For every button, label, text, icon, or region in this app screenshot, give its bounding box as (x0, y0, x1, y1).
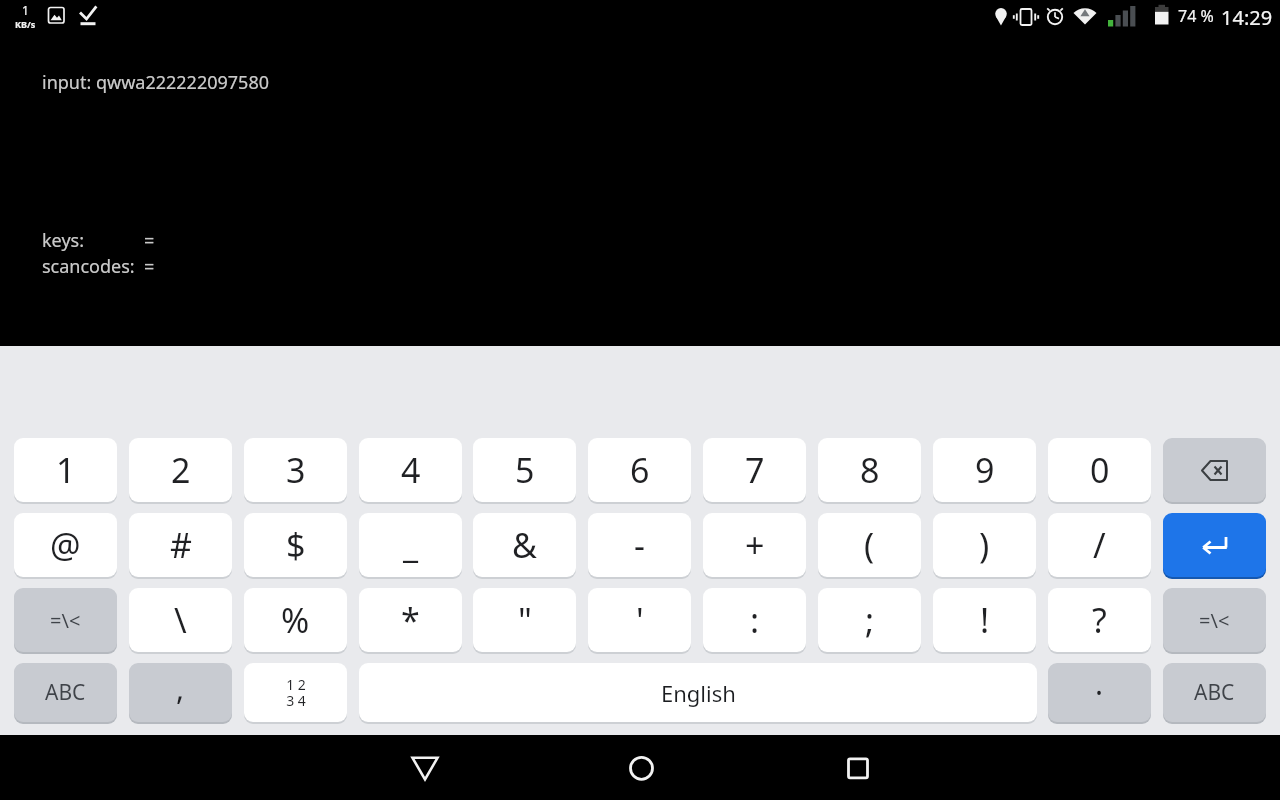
staticText: + (745, 522, 765, 568)
staticText: ? (1092, 597, 1107, 643)
button[interactable]: ABC (1163, 663, 1266, 722)
staticText: 0 (1090, 447, 1110, 493)
staticText: @ (50, 522, 81, 568)
button[interactable]: _ (359, 513, 462, 577)
button[interactable] (1163, 513, 1266, 577)
staticText: - (634, 522, 645, 568)
button[interactable]: # (129, 513, 232, 577)
staticText: =\< (50, 607, 81, 634)
staticText: 9 (975, 447, 995, 493)
button[interactable]: 7 (703, 438, 806, 502)
staticText: 8 (860, 447, 880, 493)
staticText: ' (636, 597, 644, 643)
button[interactable]: 1 (14, 438, 117, 502)
button[interactable]: 5 (473, 438, 576, 502)
staticText: 74 % (1178, 5, 1214, 27)
staticText: keys: (42, 228, 85, 253)
staticText: 1 (56, 447, 76, 493)
button[interactable]: =\< (14, 588, 117, 652)
staticText: 1 2 3 4 (286, 675, 306, 710)
button[interactable]: / (1048, 513, 1151, 577)
staticText: * (401, 597, 420, 643)
button[interactable]: , (129, 663, 232, 722)
button[interactable]: % (244, 588, 347, 652)
button[interactable]: ! (933, 588, 1036, 652)
button[interactable]: \ (129, 588, 232, 652)
button[interactable]: : (703, 588, 806, 652)
staticText: = (144, 254, 155, 279)
button[interactable]: - (588, 513, 691, 577)
button[interactable]: $ (244, 513, 347, 577)
staticText: & (512, 522, 537, 568)
staticText: : (750, 597, 760, 643)
staticText: =\< (1199, 607, 1230, 634)
button[interactable]: 2 (129, 438, 232, 502)
button[interactable]: ' (588, 588, 691, 652)
staticText: 4 (401, 447, 421, 493)
button[interactable]: 9 (933, 438, 1036, 502)
button[interactable]: 4 (359, 438, 462, 502)
button[interactable]: 1 2 3 4 (244, 663, 347, 722)
button[interactable]: · (1048, 663, 1151, 722)
button[interactable]: " (473, 588, 576, 652)
staticText: , (176, 668, 185, 709)
staticText: " (518, 597, 532, 643)
staticText: 2 (171, 447, 191, 493)
button[interactable]: ABC (14, 663, 117, 722)
staticText: / (1093, 522, 1106, 568)
button[interactable]: 8 (818, 438, 921, 502)
button[interactable]: =\< (1163, 588, 1266, 652)
staticText: # (170, 522, 192, 568)
button[interactable]: + (703, 513, 806, 577)
staticText: \ (174, 597, 187, 643)
staticText: ! (980, 597, 990, 643)
button[interactable]: 6 (588, 438, 691, 502)
button[interactable]: & (473, 513, 576, 577)
staticText: ; (865, 597, 875, 643)
button[interactable] (1163, 438, 1266, 502)
staticText: 14:29 (1221, 4, 1273, 31)
button[interactable]: 3 (244, 438, 347, 502)
staticText: English (661, 678, 736, 708)
staticText: 5 (515, 447, 535, 493)
button[interactable]: ; (818, 588, 921, 652)
staticText: ) (979, 522, 990, 568)
button[interactable]: 0 (1048, 438, 1151, 502)
staticText: % (281, 597, 310, 643)
staticText: 7 (745, 447, 765, 493)
button[interactable]: ) (933, 513, 1036, 577)
button[interactable]: ? (1048, 588, 1151, 652)
staticText: = (144, 228, 155, 253)
staticText: KB/s (15, 18, 36, 30)
staticText: 6 (630, 447, 650, 493)
staticText: _ (403, 522, 419, 568)
button[interactable]: English (359, 663, 1037, 722)
staticText: 1 (22, 2, 29, 18)
staticText: ABC (1194, 678, 1235, 707)
staticText: 3 (286, 447, 306, 493)
staticText: · (1095, 672, 1104, 713)
staticText: ABC (45, 678, 86, 707)
staticText: $ (286, 522, 306, 568)
staticText: scancodes: (42, 254, 135, 279)
button[interactable]: @ (14, 513, 117, 577)
staticText: ( (864, 522, 875, 568)
button[interactable]: ( (818, 513, 921, 577)
staticText: input: qwwa222222097580 (42, 70, 269, 95)
button[interactable]: * (359, 588, 462, 652)
